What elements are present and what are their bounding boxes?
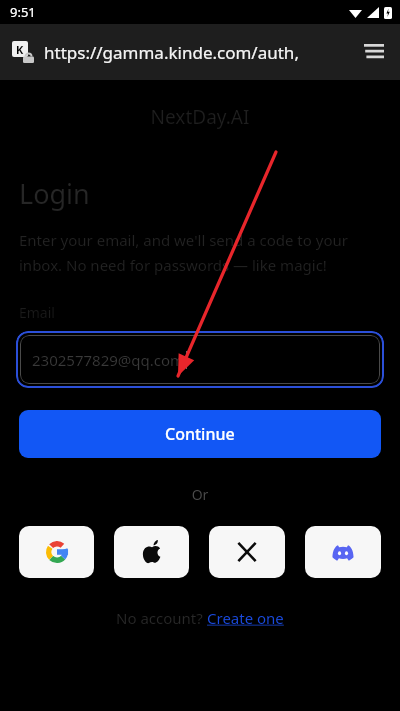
staticText: Login xyxy=(19,175,90,212)
staticText: https://gamma.kinde.com/auth, xyxy=(44,41,354,64)
button[interactable]: Sign in with Google xyxy=(19,526,94,578)
staticText: K xyxy=(16,42,24,57)
staticText: NextDay.AI xyxy=(0,104,400,130)
button[interactable]: 2302577829@qq.com xyxy=(20,335,380,384)
button[interactable]: Sign in with X xyxy=(209,526,285,578)
staticText: Or xyxy=(0,485,400,504)
staticText: 2302577829@qq.com xyxy=(32,350,185,370)
staticText: Create one xyxy=(207,608,284,628)
button[interactable]: Continue xyxy=(19,410,381,458)
staticText: Email xyxy=(19,303,55,322)
staticText: Enter your email, and we'll send a code … xyxy=(19,230,381,275)
staticText: No account? xyxy=(116,608,207,628)
staticText: Continue xyxy=(165,423,235,445)
staticText: 9:51 xyxy=(10,3,36,21)
button[interactable]: Sign in with Apple xyxy=(114,526,189,578)
button[interactable]: Sign in with Discord xyxy=(305,526,381,578)
button[interactable]: Menu xyxy=(360,38,388,66)
button[interactable]: Create one xyxy=(207,608,284,628)
